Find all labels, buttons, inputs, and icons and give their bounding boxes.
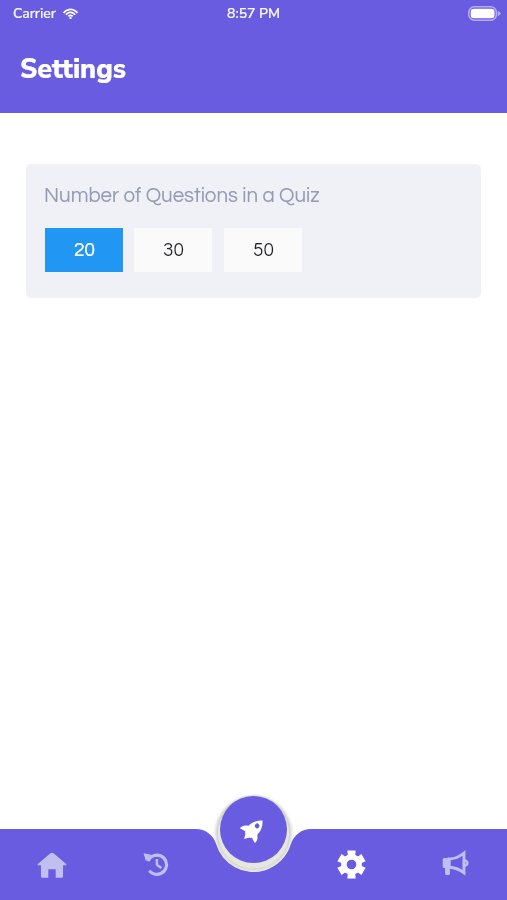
button[interactable]: Start quiz <box>220 796 287 863</box>
staticText: Settings <box>20 51 127 88</box>
button[interactable]: Settings <box>299 829 403 900</box>
button[interactable]: Announcements <box>403 829 507 900</box>
staticText: Number of Questions in a Quiz <box>44 185 320 206</box>
button[interactable]: 50 <box>224 228 302 272</box>
button[interactable]: 20 <box>45 228 123 272</box>
staticText: 50 <box>253 240 274 260</box>
staticText: 30 <box>163 240 184 260</box>
staticText: 8:57 PM <box>227 4 281 23</box>
button[interactable]: Home <box>0 829 104 900</box>
staticText: Carrier <box>13 4 56 23</box>
button[interactable]: 30 <box>134 228 212 272</box>
button[interactable]: History <box>104 829 208 900</box>
staticText: 20 <box>74 240 95 260</box>
